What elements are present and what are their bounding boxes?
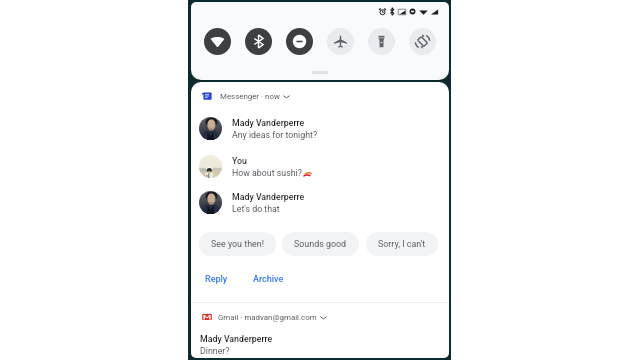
staticText: Any ideas for tonight? — [232, 130, 318, 140]
staticText: Let's do that — [232, 204, 280, 214]
staticText: Dinner? — [200, 346, 230, 356]
button[interactable]: Mady Vanderperre — [199, 117, 318, 140]
button[interactable]: Sorry, I can't — [366, 232, 438, 256]
button[interactable]: See you then! — [199, 232, 276, 256]
button[interactable]: Expand — [319, 313, 328, 322]
staticText: Mady Vanderperre — [232, 192, 305, 202]
button[interactable]: Do not disturb — [286, 28, 313, 55]
button[interactable]: Flashlight — [368, 28, 395, 55]
button[interactable]: Airplane mode — [327, 28, 354, 55]
button[interactable]: Archive — [247, 271, 290, 288]
staticText: Mady Vanderperre — [232, 118, 305, 128]
button[interactable]: Messenger notification header — [202, 91, 291, 101]
staticText: Sounds good — [294, 239, 347, 249]
button[interactable]: Sounds good — [282, 232, 359, 256]
button[interactable]: Gmail notification header — [202, 312, 328, 322]
staticText: Sorry, I can't — [378, 239, 426, 249]
button[interactable]: Auto rotate — [409, 28, 436, 55]
staticText: You — [232, 156, 247, 166]
staticText: Archive — [253, 274, 284, 285]
staticText: Messenger · now — [220, 92, 280, 101]
button[interactable]: Reply — [199, 271, 234, 288]
staticText: Gmail · madvan@gmail.com — [218, 313, 317, 322]
button[interactable]: Wi-Fi — [204, 28, 231, 55]
button[interactable]: You — [199, 155, 312, 178]
staticText: Mady Vanderperre — [200, 334, 273, 344]
button[interactable]: Expand — [282, 92, 291, 101]
button[interactable]: Bluetooth — [245, 28, 272, 55]
staticText: See you then! — [211, 239, 264, 249]
button[interactable]: Mady Vanderperre — [199, 191, 305, 214]
staticText: Reply — [205, 274, 228, 285]
staticText: How about sushi? — [232, 168, 302, 178]
